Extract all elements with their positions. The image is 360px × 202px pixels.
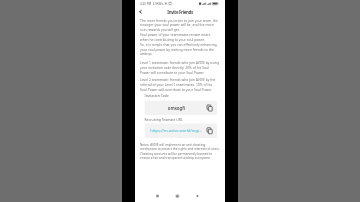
staticText: The more friends you invite to join your… [140, 18, 219, 32]
staticText: 4:20 PM 4.9KB/s [140, 1, 163, 5]
staticText: omxogfi [168, 105, 185, 111]
button[interactable]: Back [193, 192, 200, 199]
staticText: https://m.avive.world/regi... [150, 128, 202, 133]
staticText: Soul power of your teammates remain inta… [140, 32, 219, 42]
button[interactable]: omxogfi [144, 100, 217, 115]
staticText: Level 1 teammate: friends who join AVIVE… [140, 61, 219, 75]
staticText: Invite Friends [167, 9, 193, 15]
button[interactable]: Copy [206, 105, 213, 111]
button[interactable]: Copy [206, 127, 213, 134]
button[interactable]: Recents [154, 192, 161, 199]
staticText: Recruiting Teamate URL [144, 117, 183, 122]
staticText: Level 2 teammate: friends who join AVIVE… [140, 78, 219, 92]
staticText: Invitation Code [144, 93, 169, 98]
button[interactable]: https://m.avive.world/regi... [144, 123, 217, 138]
button[interactable]: Back [137, 8, 144, 15]
button[interactable]: Home [174, 192, 181, 199]
staticText: Notes: AVIVE will implement an anti-chea… [140, 142, 222, 160]
staticText: So, it is simple that you can effectivel… [140, 42, 219, 56]
